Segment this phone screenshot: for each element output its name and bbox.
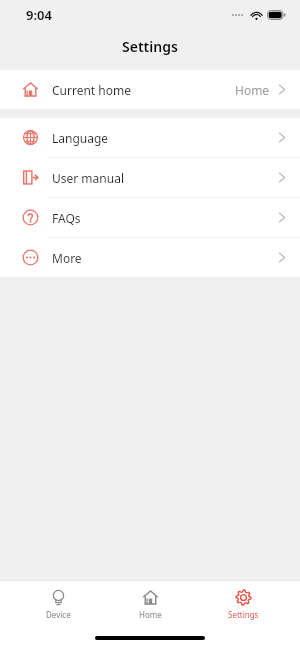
staticText: Settings — [122, 37, 178, 56]
button[interactable]: Device — [23, 589, 93, 620]
button[interactable]: More — [0, 238, 300, 277]
staticText: Device — [46, 609, 71, 620]
staticText: Home — [235, 82, 270, 98]
button[interactable]: User manual — [0, 158, 300, 197]
staticText: Current home — [52, 82, 131, 98]
button[interactable]: Settings — [208, 589, 278, 620]
staticText: 9:04 — [26, 6, 52, 24]
staticText: FAQs — [52, 210, 81, 226]
staticText: User manual — [52, 170, 124, 186]
staticText: Language — [52, 130, 109, 146]
button[interactable]: Current home — [0, 70, 300, 109]
button[interactable]: FAQs — [0, 198, 300, 237]
staticText: Settings — [228, 609, 259, 620]
staticText: More — [52, 250, 82, 266]
button[interactable]: Language — [0, 118, 300, 157]
staticText: Home — [139, 609, 162, 620]
button[interactable]: Home — [115, 589, 185, 620]
